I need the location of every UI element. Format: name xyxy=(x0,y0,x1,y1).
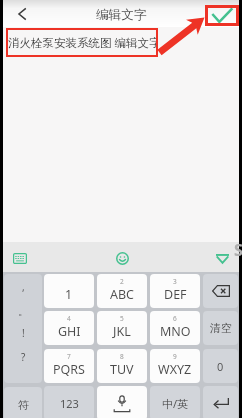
button[interactable]: ! xyxy=(4,321,42,345)
button[interactable]: 1 xyxy=(44,274,94,308)
staticText: S xyxy=(234,239,242,261)
button[interactable]: 2 xyxy=(97,274,147,308)
button[interactable]: ? xyxy=(4,345,42,369)
button[interactable]: 3 xyxy=(150,274,200,308)
staticText: , xyxy=(22,280,25,294)
staticText: 编辑文字 xyxy=(96,7,147,23)
button[interactable]: 。 xyxy=(4,299,42,323)
staticText: ? xyxy=(21,350,26,364)
button[interactable]: 9 xyxy=(150,349,200,383)
button[interactable]: 5 xyxy=(97,311,147,345)
button[interactable]: Back xyxy=(11,3,33,25)
staticText: 7 xyxy=(67,352,71,361)
staticText: 8 xyxy=(120,352,124,361)
staticText: 3 xyxy=(173,277,177,286)
button[interactable]: Emoji xyxy=(111,247,133,269)
button[interactable]: Space / voice input xyxy=(97,386,147,418)
button[interactable]: Confirm xyxy=(205,5,239,26)
staticText: TUV xyxy=(110,361,134,378)
button[interactable]: Keyboard layout xyxy=(9,247,31,269)
staticText: ABC xyxy=(110,286,135,303)
button[interactable]: Backspace xyxy=(203,274,238,308)
staticText: 5 xyxy=(120,314,124,323)
staticText: 清空 xyxy=(210,321,232,335)
button[interactable]: 清空 xyxy=(203,311,238,345)
staticText: 2 xyxy=(120,277,124,286)
staticText: 6 xyxy=(173,314,177,323)
staticText: WXYZ xyxy=(158,361,192,378)
button[interactable]: Enter xyxy=(203,386,238,418)
button[interactable]: 7 xyxy=(44,349,94,383)
staticText: MNO xyxy=(160,323,191,340)
staticText: PQRS xyxy=(53,361,85,378)
button[interactable]: 123 xyxy=(44,386,94,418)
staticText: 4 xyxy=(67,314,71,323)
button[interactable]: , xyxy=(4,275,42,299)
staticText: JKL xyxy=(113,323,131,340)
button[interactable]: 8 xyxy=(97,349,147,383)
button[interactable]: Hide keyboard xyxy=(211,247,233,269)
staticText: 消火栓泵安装系统图 编辑文字 xyxy=(8,35,158,51)
staticText: 9 xyxy=(173,352,177,361)
staticText: DEF xyxy=(164,286,187,303)
staticText: GHI xyxy=(58,323,81,340)
staticText: 123 xyxy=(60,396,79,411)
staticText: 。 xyxy=(18,305,28,318)
staticText: 0 xyxy=(217,359,224,374)
button[interactable]: 中/英 xyxy=(150,386,200,418)
staticText: 符 xyxy=(18,398,29,412)
button[interactable]: 符 xyxy=(4,387,42,418)
button[interactable]: 0 xyxy=(203,349,238,383)
staticText: ! xyxy=(22,326,25,340)
button[interactable]: 4 xyxy=(44,311,94,345)
staticText: 1 xyxy=(65,286,73,303)
button[interactable]: 6 xyxy=(150,311,200,345)
staticText: 中/英 xyxy=(162,396,189,411)
